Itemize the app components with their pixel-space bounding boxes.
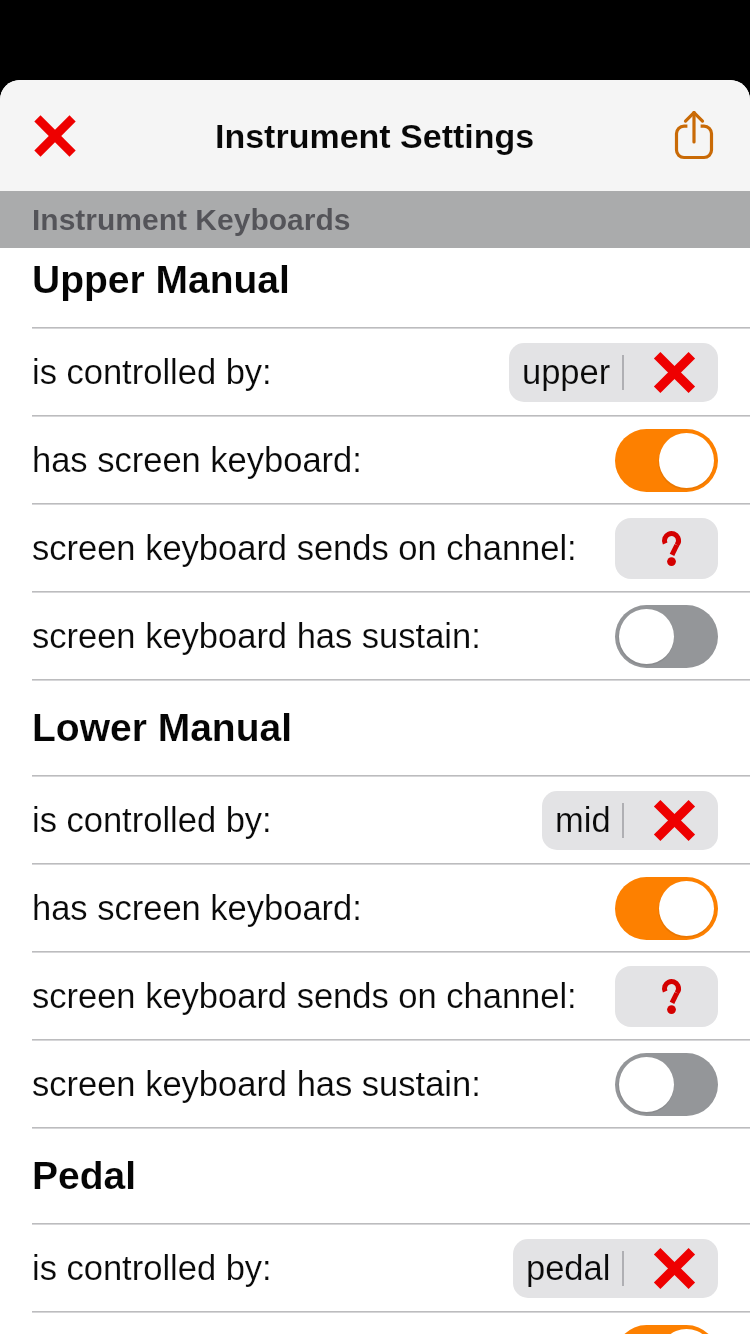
staticText: is controlled by: [32,801,272,840]
staticText: screen keyboard has sustain: [32,1065,481,1104]
staticText: is controlled by: [32,353,272,392]
staticText: Upper Manual [32,258,290,302]
button[interactable]: screen keyboard has sustain: [0,592,750,680]
staticText: Pedal [32,1154,137,1198]
button[interactable]: screen keyboard has sustain: [0,1040,750,1128]
button[interactable]: has screen keyboard: [615,429,718,492]
button[interactable]: has screen keyboard: [0,1312,750,1334]
button[interactable]: screen keyboard has sustain: [615,1053,718,1116]
button[interactable]: is controlled by: [0,328,750,416]
staticText: has screen keyboard: [32,889,362,928]
staticText: upper [522,353,611,392]
button[interactable]: screen keyboard sends on channel: [0,504,750,592]
button[interactable]: pedal [513,1239,718,1298]
button[interactable]: Close [13,94,97,178]
button[interactable]: has screen keyboard: [0,416,750,504]
staticText: screen keyboard sends on channel: [32,529,577,568]
staticText: Instrument Keyboards [32,203,351,237]
button[interactable]: screen keyboard has sustain: [615,605,718,668]
staticText: pedal [526,1249,611,1288]
staticText: Instrument Settings [215,117,535,155]
button[interactable]: has screen keyboard: [615,877,718,940]
button[interactable]: is controlled by: [0,776,750,864]
button[interactable]: has screen keyboard: [0,864,750,952]
button[interactable]: Share [652,92,736,176]
button[interactable]: is controlled by: [0,1224,750,1312]
staticText: screen keyboard sends on channel: [32,977,577,1016]
button[interactable]: upper [509,343,718,402]
button[interactable]: has screen keyboard: [615,1325,718,1334]
button[interactable]: Help [615,966,718,1027]
staticText: is controlled by: [32,1249,272,1288]
staticText: Lower Manual [32,706,293,750]
staticText: mid [555,801,611,840]
staticText: screen keyboard has sustain: [32,617,481,656]
button[interactable]: mid [542,791,718,850]
staticText: has screen keyboard: [32,441,362,480]
button[interactable]: Help [615,518,718,579]
button[interactable]: screen keyboard sends on channel: [0,952,750,1040]
